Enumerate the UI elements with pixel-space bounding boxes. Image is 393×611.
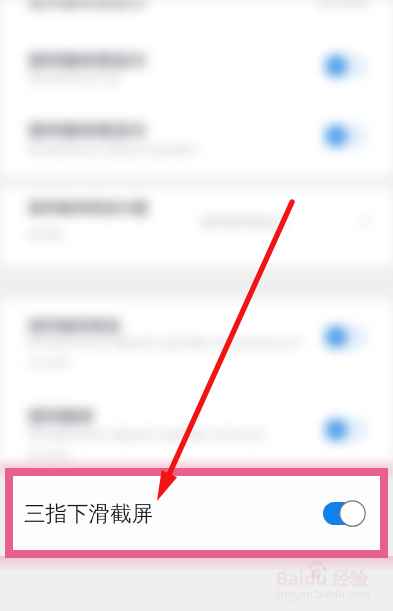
staticText: 三指下滑截屏 (24, 500, 153, 527)
button[interactable]: 三指下滑截屏 (13, 476, 380, 550)
staticText: Baidu 经验 (276, 566, 368, 591)
staticText: jingyan.baidu.com (275, 586, 371, 601)
button[interactable]: 三指下滑截屏开关 (323, 499, 365, 528)
